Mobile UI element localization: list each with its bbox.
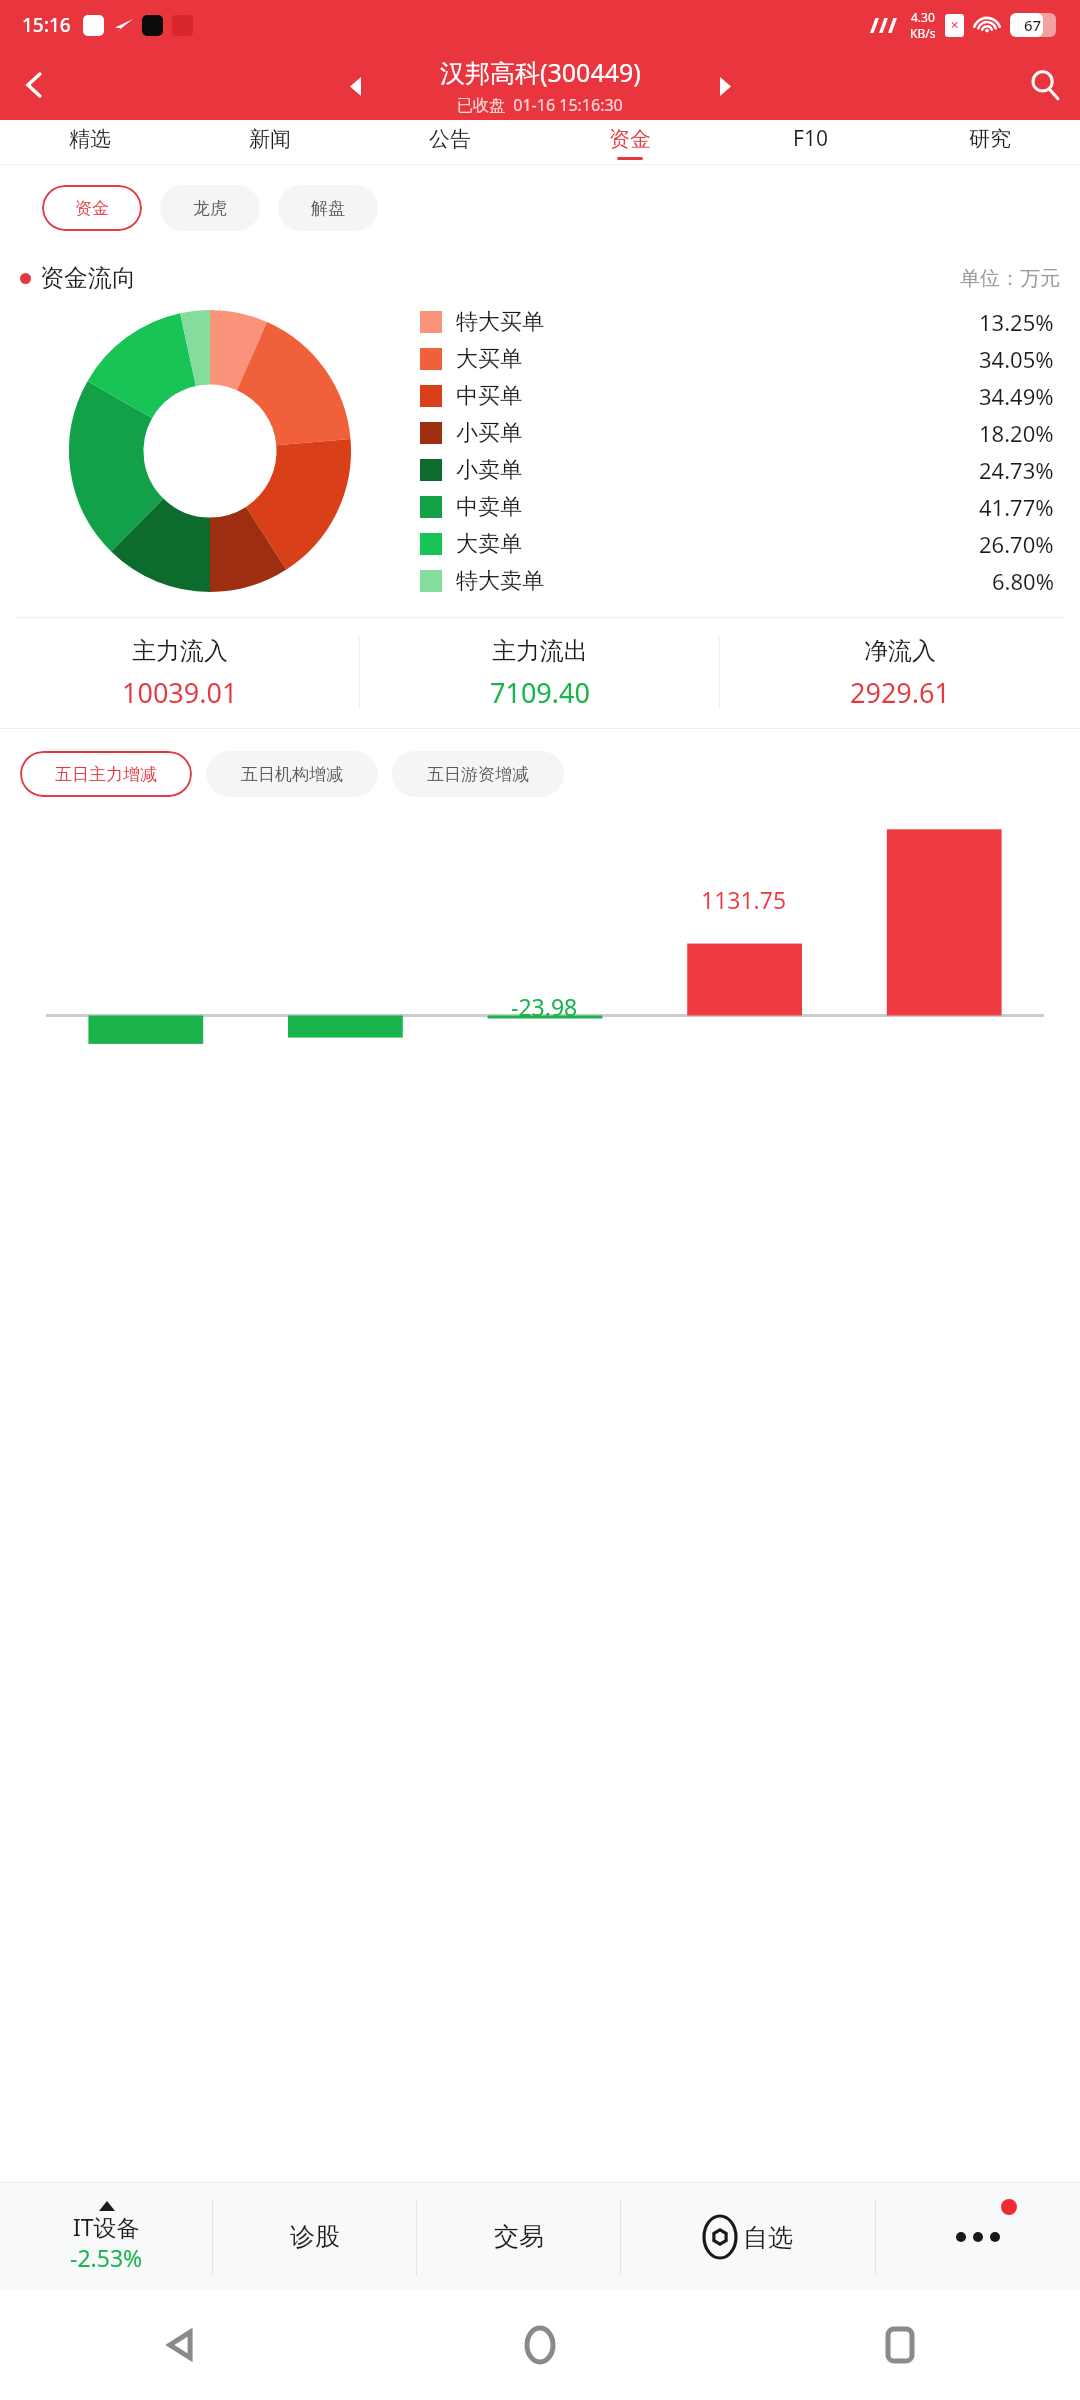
- staticText: 龙虎: [193, 198, 227, 219]
- staticText: -346.95: [305, 1011, 385, 1042]
- button[interactable]: 最近任务: [720, 2290, 1080, 2400]
- button[interactable]: 上一只: [335, 66, 375, 106]
- staticText: 24.73%: [979, 455, 1054, 485]
- staticText: 4.30: [911, 9, 935, 25]
- staticText: -23.98: [511, 991, 578, 1022]
- button[interactable]: 自选: [621, 2183, 876, 2290]
- staticText: 大买单: [456, 345, 522, 373]
- staticText: 主力流出: [492, 636, 588, 666]
- staticText: 精选: [69, 126, 111, 152]
- staticText: 解盘: [311, 198, 345, 219]
- staticText: 1131.75: [701, 884, 787, 915]
- staticText: 18.20%: [979, 418, 1054, 448]
- staticText: KB/s: [910, 25, 936, 41]
- button[interactable]: 诊股: [213, 2183, 417, 2290]
- button[interactable]: 公告: [360, 120, 540, 165]
- staticText: 研究: [969, 126, 1011, 152]
- staticText: 净流入: [864, 636, 936, 666]
- button[interactable]: 交易: [417, 2183, 621, 2290]
- staticText: 五日主力增减: [55, 764, 157, 785]
- button[interactable]: 精选: [0, 120, 180, 165]
- staticText: 特大买单: [456, 308, 544, 336]
- staticText: 34.05%: [979, 344, 1054, 374]
- staticText: 主力流入: [132, 636, 228, 666]
- button[interactable]: 主页: [360, 2290, 720, 2400]
- staticText: 小买单: [456, 419, 522, 447]
- button[interactable]: 净流入: [720, 618, 1080, 728]
- staticText: 34.49%: [979, 381, 1054, 411]
- staticText: 单位：万元: [960, 266, 1060, 291]
- button[interactable]: 返回: [0, 50, 70, 120]
- staticText: 五日游资增减: [427, 764, 529, 785]
- staticText: 26.70%: [979, 529, 1054, 559]
- staticText: 41.77%: [979, 492, 1054, 522]
- button[interactable]: 五日游资增减: [392, 751, 564, 797]
- button[interactable]: 返回: [0, 2290, 360, 2400]
- staticText: 自选: [743, 2222, 793, 2253]
- staticText: -2.53%: [70, 2242, 143, 2273]
- staticText: 15:16: [22, 12, 71, 38]
- button[interactable]: IT设备: [0, 2183, 213, 2290]
- staticText: 6.80%: [992, 566, 1054, 596]
- button[interactable]: 主力流入: [0, 618, 360, 728]
- button[interactable]: 研究: [900, 120, 1080, 165]
- staticText: 大卖单: [456, 530, 522, 558]
- staticText: 诊股: [290, 2221, 340, 2252]
- button[interactable]: F10: [720, 120, 900, 165]
- staticText: 2929.61: [850, 674, 950, 711]
- staticText: 中卖单: [456, 493, 522, 521]
- staticText: -447.20: [106, 1017, 186, 1048]
- button[interactable]: 搜索: [1010, 50, 1080, 120]
- staticText: 资金: [75, 198, 109, 219]
- staticText: 7109.40: [490, 674, 590, 711]
- staticText: 五日机构增减: [241, 764, 343, 785]
- button[interactable]: 五日机构增减: [206, 751, 378, 797]
- button[interactable]: 龙虎: [160, 185, 260, 231]
- button[interactable]: 解盘: [278, 185, 378, 231]
- button[interactable]: 下一只: [705, 66, 745, 106]
- staticText: 中买单: [456, 382, 522, 410]
- staticText: F10: [793, 124, 828, 153]
- staticText: 13.25%: [979, 307, 1054, 337]
- staticText: 10039.01: [122, 674, 238, 711]
- staticText: 67: [1024, 15, 1042, 35]
- staticText: 汉邦高科(300449): [440, 55, 641, 89]
- staticText: 资金: [609, 126, 651, 152]
- button[interactable]: 主力流出: [360, 618, 720, 728]
- staticText: IT设备: [73, 2211, 140, 2242]
- button[interactable]: 新闻: [180, 120, 360, 165]
- button[interactable]: 资金: [42, 185, 142, 231]
- staticText: 小卖单: [456, 456, 522, 484]
- staticText: 资金流向: [40, 263, 136, 293]
- staticText: ✕: [950, 19, 960, 32]
- button[interactable]: 资金: [540, 120, 720, 165]
- staticText: 交易: [494, 2221, 544, 2252]
- button[interactable]: 五日主力增减: [20, 751, 192, 797]
- staticText: 特大卖单: [456, 567, 544, 595]
- staticText: 公告: [429, 126, 471, 152]
- staticText: 已收盘 01-16 15:16:30: [457, 94, 623, 116]
- button[interactable]: 更多: [876, 2183, 1080, 2290]
- staticText: 新闻: [249, 126, 291, 152]
